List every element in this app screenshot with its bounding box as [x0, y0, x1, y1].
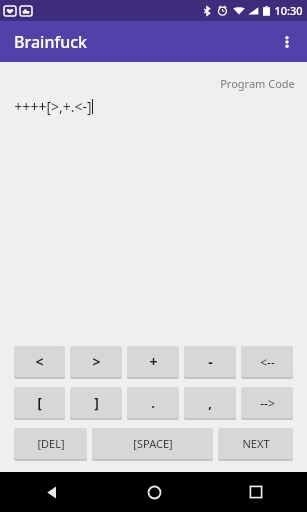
staticText: - — [208, 352, 213, 371]
staticText: [SPACE] — [133, 436, 173, 451]
staticText: --> — [260, 395, 275, 411]
staticText: Brainfuck — [14, 31, 87, 53]
staticText: <-- — [260, 354, 275, 370]
staticText: [ — [37, 393, 42, 412]
button[interactable]: ] — [70, 387, 122, 418]
staticText: > — [92, 352, 101, 371]
button[interactable]: Home — [103, 472, 205, 512]
button[interactable]: --> — [241, 387, 293, 418]
button[interactable]: > — [70, 346, 122, 377]
button[interactable]: Recent apps — [205, 472, 307, 512]
staticText: + — [149, 352, 158, 371]
button[interactable]: <-- — [241, 346, 293, 377]
staticText: < — [35, 352, 44, 371]
button[interactable]: [SPACE] — [92, 428, 213, 459]
button[interactable]: < — [14, 346, 65, 377]
staticText: Program Code — [220, 76, 295, 91]
button[interactable]: Back — [0, 472, 103, 512]
staticText: [DEL] — [37, 436, 65, 451]
staticText: 10:30 — [274, 3, 303, 18]
button[interactable]: NEXT — [218, 428, 293, 459]
staticText: ] — [94, 393, 99, 412]
button[interactable]: - — [184, 346, 236, 377]
button[interactable]: ++++[>,+.<-] — [0, 97, 307, 116]
staticText: . — [151, 394, 155, 412]
button[interactable]: . — [127, 387, 179, 418]
button[interactable]: + — [127, 346, 179, 377]
staticText: , — [208, 394, 212, 412]
button[interactable]: , — [184, 387, 236, 418]
button[interactable]: [ — [14, 387, 65, 418]
button[interactable]: [DEL] — [14, 428, 87, 459]
button[interactable]: More options — [267, 22, 307, 62]
staticText: NEXT — [242, 436, 270, 451]
staticText: ++++[>,+.<-] — [14, 97, 92, 116]
